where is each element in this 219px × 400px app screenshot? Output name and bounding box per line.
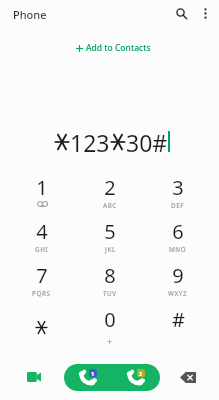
staticText: 7 (36, 262, 48, 289)
button[interactable]: 7 (7, 259, 76, 303)
button[interactable]: 0 (76, 303, 144, 347)
staticText: PQRS (32, 289, 51, 298)
button[interactable]: 5 (76, 215, 144, 259)
staticText: 9 (172, 262, 184, 289)
staticText: Phone (13, 7, 47, 22)
button[interactable]: Backspace (167, 356, 209, 398)
staticText: 4 (36, 218, 48, 245)
staticText: 30# (126, 127, 168, 155)
button[interactable] (7, 303, 76, 347)
staticText: MNO (169, 245, 187, 254)
button[interactable]: 4 (7, 215, 76, 259)
staticText: 8 (104, 262, 116, 289)
button[interactable]: Video call (13, 356, 55, 398)
staticText: 2 (139, 370, 143, 377)
staticText: 3 (172, 174, 184, 201)
staticText: + (107, 335, 113, 347)
button[interactable]: Search (169, 1, 194, 26)
staticText: GHI (35, 245, 49, 254)
staticText: JKL (105, 245, 116, 254)
button[interactable]: # (144, 303, 212, 347)
staticText: WXYZ (168, 289, 188, 298)
button[interactable]: 6 (144, 215, 212, 259)
staticText: 123 (70, 127, 110, 155)
button[interactable]: More options (193, 1, 218, 26)
button[interactable]: Call with SIM 1 (64, 364, 112, 391)
staticText: 1 (36, 174, 48, 201)
button[interactable]: 9 (144, 259, 212, 303)
button[interactable]: 2 (76, 171, 144, 215)
button[interactable]: 3 (144, 171, 212, 215)
staticText: Add to Contacts (86, 42, 151, 54)
staticText: ABC (103, 201, 117, 210)
button[interactable]: 1 (7, 171, 76, 215)
button[interactable]: Add to Contacts (70, 39, 157, 57)
staticText: 6 (172, 218, 184, 245)
staticText: 2 (104, 174, 116, 201)
staticText: TUV (103, 289, 117, 298)
staticText: 0 (104, 306, 116, 333)
staticText: # (172, 306, 185, 333)
staticText: 5 (104, 218, 116, 245)
staticText: DEF (171, 201, 185, 210)
staticText: 1 (91, 370, 95, 377)
button[interactable]: Call with SIM 2 (112, 364, 160, 391)
button[interactable]: 8 (76, 259, 144, 303)
